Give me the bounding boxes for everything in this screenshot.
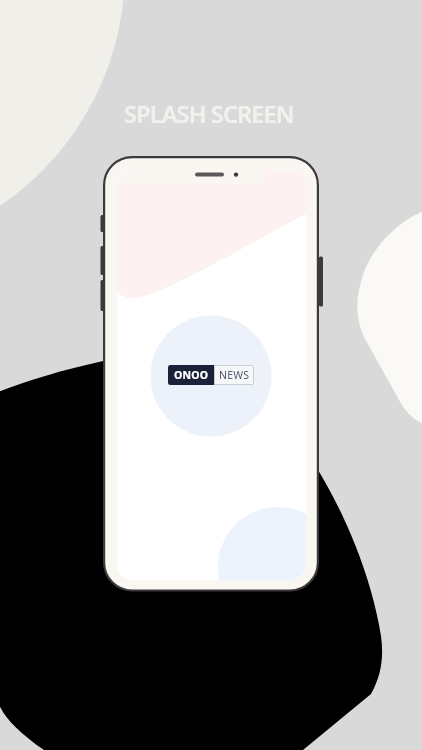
button[interactable]: ONOO (168, 365, 254, 385)
staticText: ONOO (174, 368, 209, 382)
staticText: SPLASH SCREEN (124, 98, 294, 130)
staticText: NEWS (219, 368, 250, 382)
